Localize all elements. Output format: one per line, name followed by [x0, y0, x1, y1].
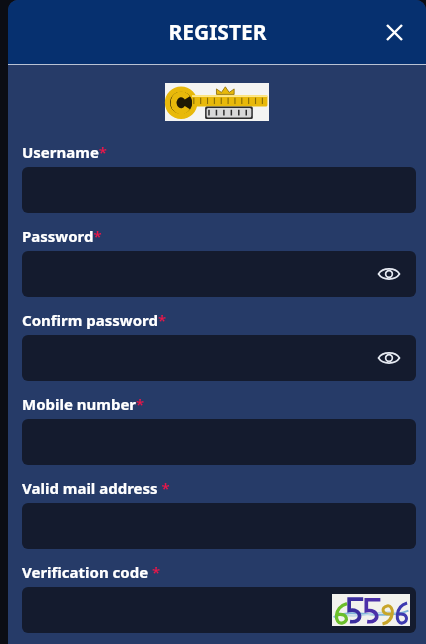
staticText: Verification code *: [22, 562, 161, 582]
button[interactable]: Refresh verification code: [332, 594, 410, 626]
staticText: Mobile number*: [22, 394, 145, 414]
staticText: Password*: [22, 226, 102, 246]
button[interactable]: Show password: [374, 343, 404, 373]
staticText: Valid mail address *: [22, 478, 170, 498]
button[interactable]: Fortune Play Gaming logo: [165, 83, 269, 121]
button[interactable]: Show password: [374, 259, 404, 289]
staticText: Confirm password*: [22, 310, 167, 330]
button[interactable]: Show password: [22, 251, 416, 297]
staticText: Username*: [22, 142, 107, 162]
button[interactable]: Close: [374, 12, 414, 52]
staticText: REGISTER: [168, 18, 267, 47]
button[interactable]: Refresh verification code: [22, 587, 416, 633]
button[interactable]: Show password: [22, 335, 416, 381]
